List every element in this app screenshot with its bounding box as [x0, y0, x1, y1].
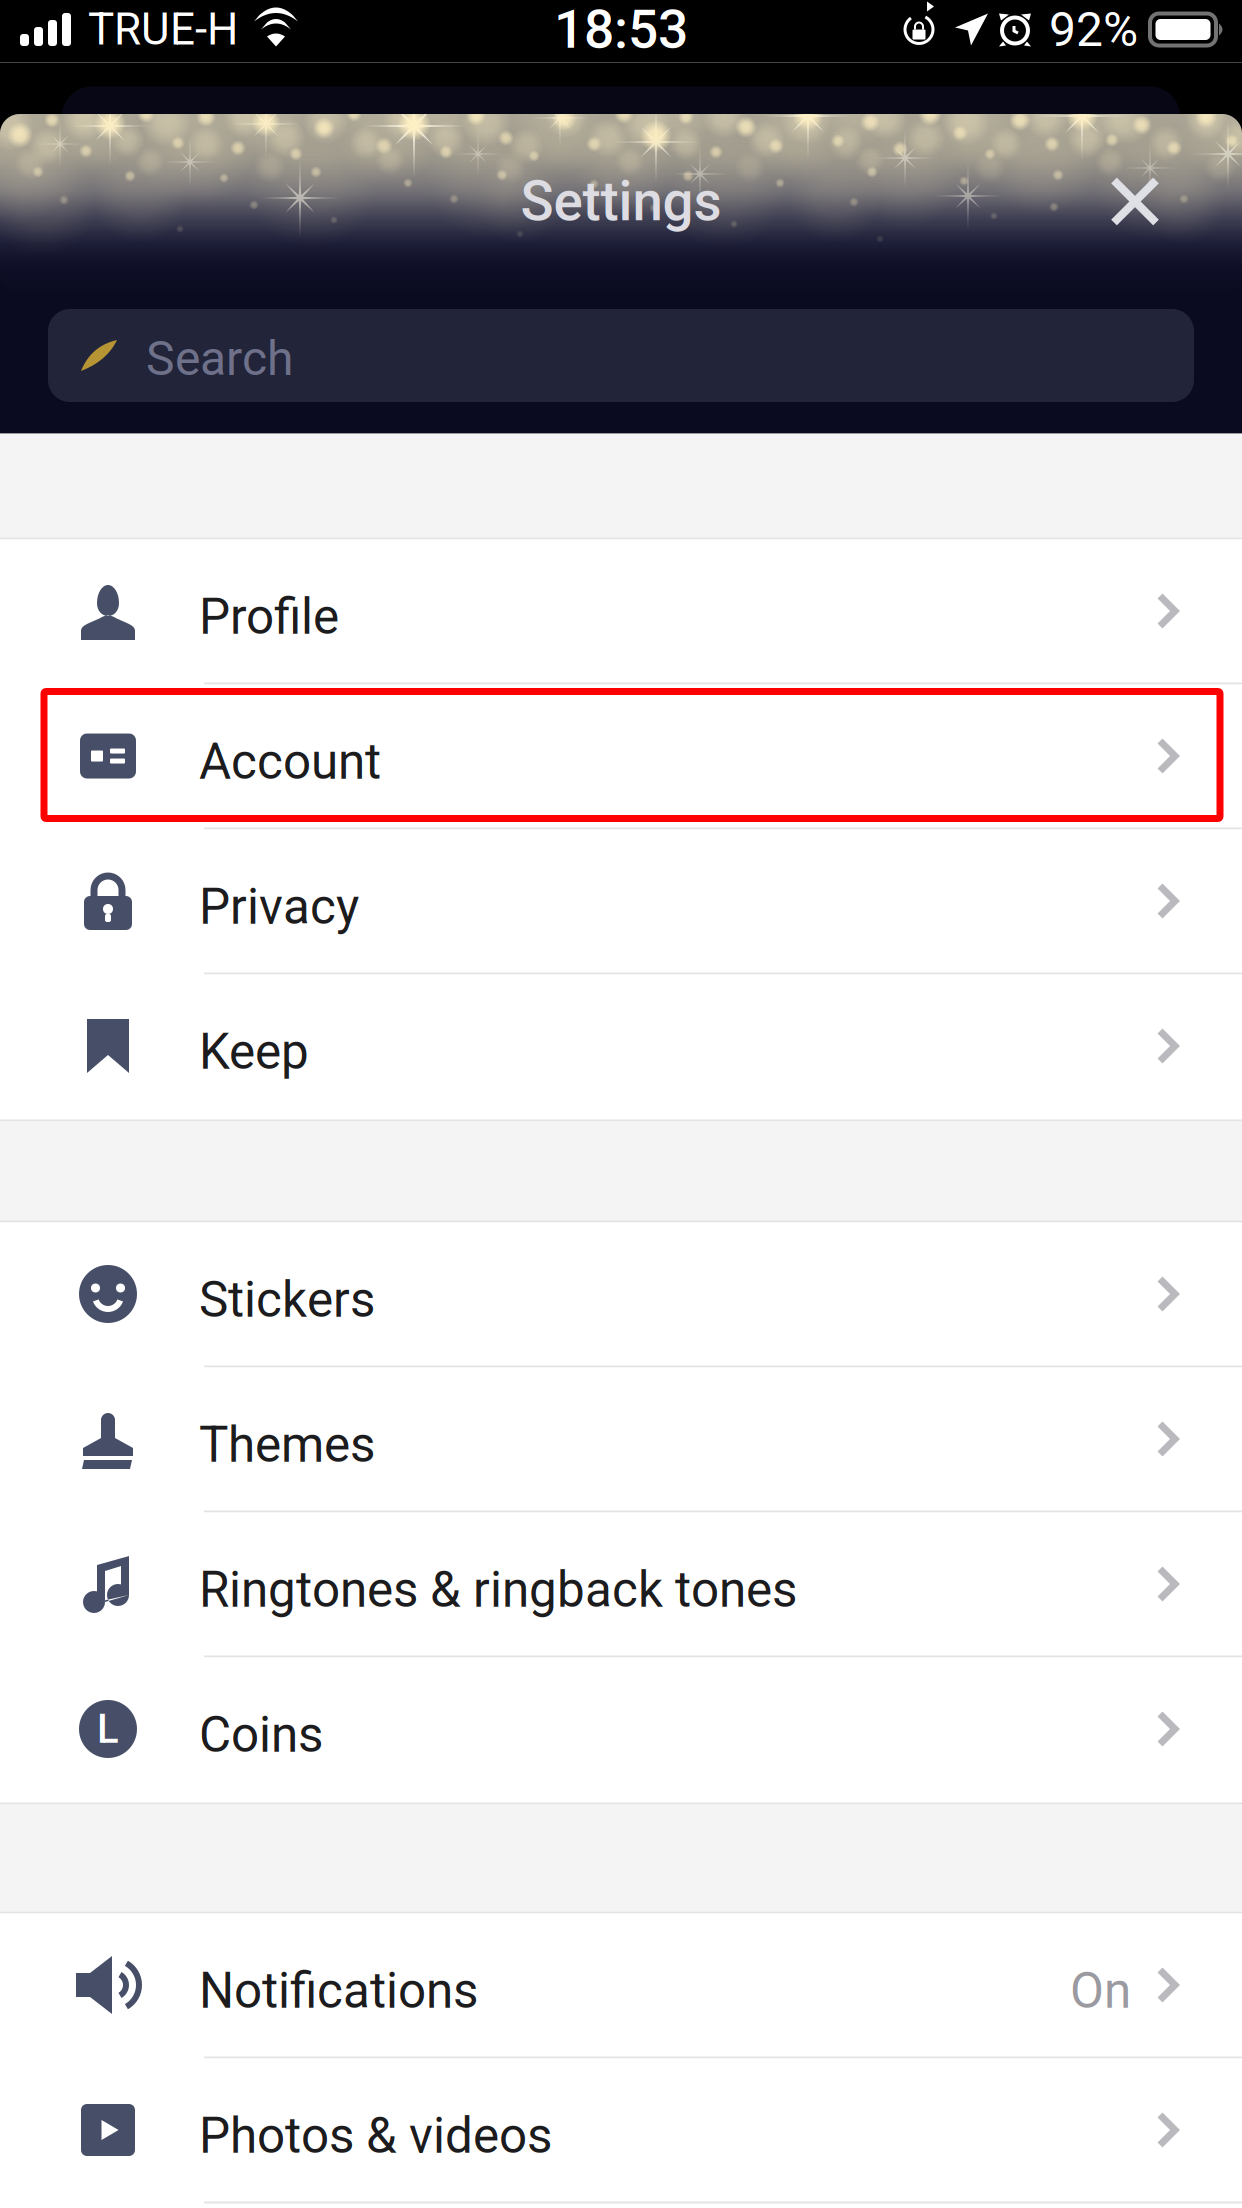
button[interactable]: Themes	[0, 1367, 1242, 1512]
button[interactable]: Privacy	[0, 829, 1242, 974]
staticText: Ringtones & ringback tones	[199, 1561, 797, 1619]
staticText: Account	[199, 733, 381, 791]
staticText: Profile	[199, 588, 339, 646]
staticText: Notifications	[199, 1962, 478, 2020]
button[interactable]: Photos & videos	[0, 2058, 1242, 2203]
button[interactable]: Search	[48, 309, 1194, 402]
staticText: 18:53	[554, 0, 688, 61]
staticText: 92%	[1049, 1, 1138, 58]
staticText: Themes	[199, 1416, 375, 1474]
staticText: On	[1070, 1962, 1131, 2020]
button[interactable]: Ringtones & ringback tones	[0, 1512, 1242, 1657]
staticText: Photos & videos	[199, 2107, 552, 2165]
button[interactable]: Close	[1083, 149, 1187, 253]
button[interactable]: Account	[0, 684, 1242, 829]
button[interactable]: Profile	[0, 539, 1242, 684]
staticText: Settings	[520, 169, 721, 234]
staticText: Search	[146, 330, 293, 387]
staticText: L	[97, 1706, 119, 1752]
button[interactable]: Notifications	[0, 1913, 1242, 2058]
staticText: Keep	[199, 1023, 309, 1081]
staticText: Stickers	[199, 1271, 375, 1329]
button[interactable]: L	[0, 1657, 1242, 1802]
button[interactable]: Stickers	[0, 1222, 1242, 1367]
button[interactable]: Keep	[0, 974, 1242, 1119]
staticText: Privacy	[199, 878, 359, 936]
staticText: Coins	[199, 1706, 323, 1764]
staticText: TRUE-H	[88, 4, 238, 55]
